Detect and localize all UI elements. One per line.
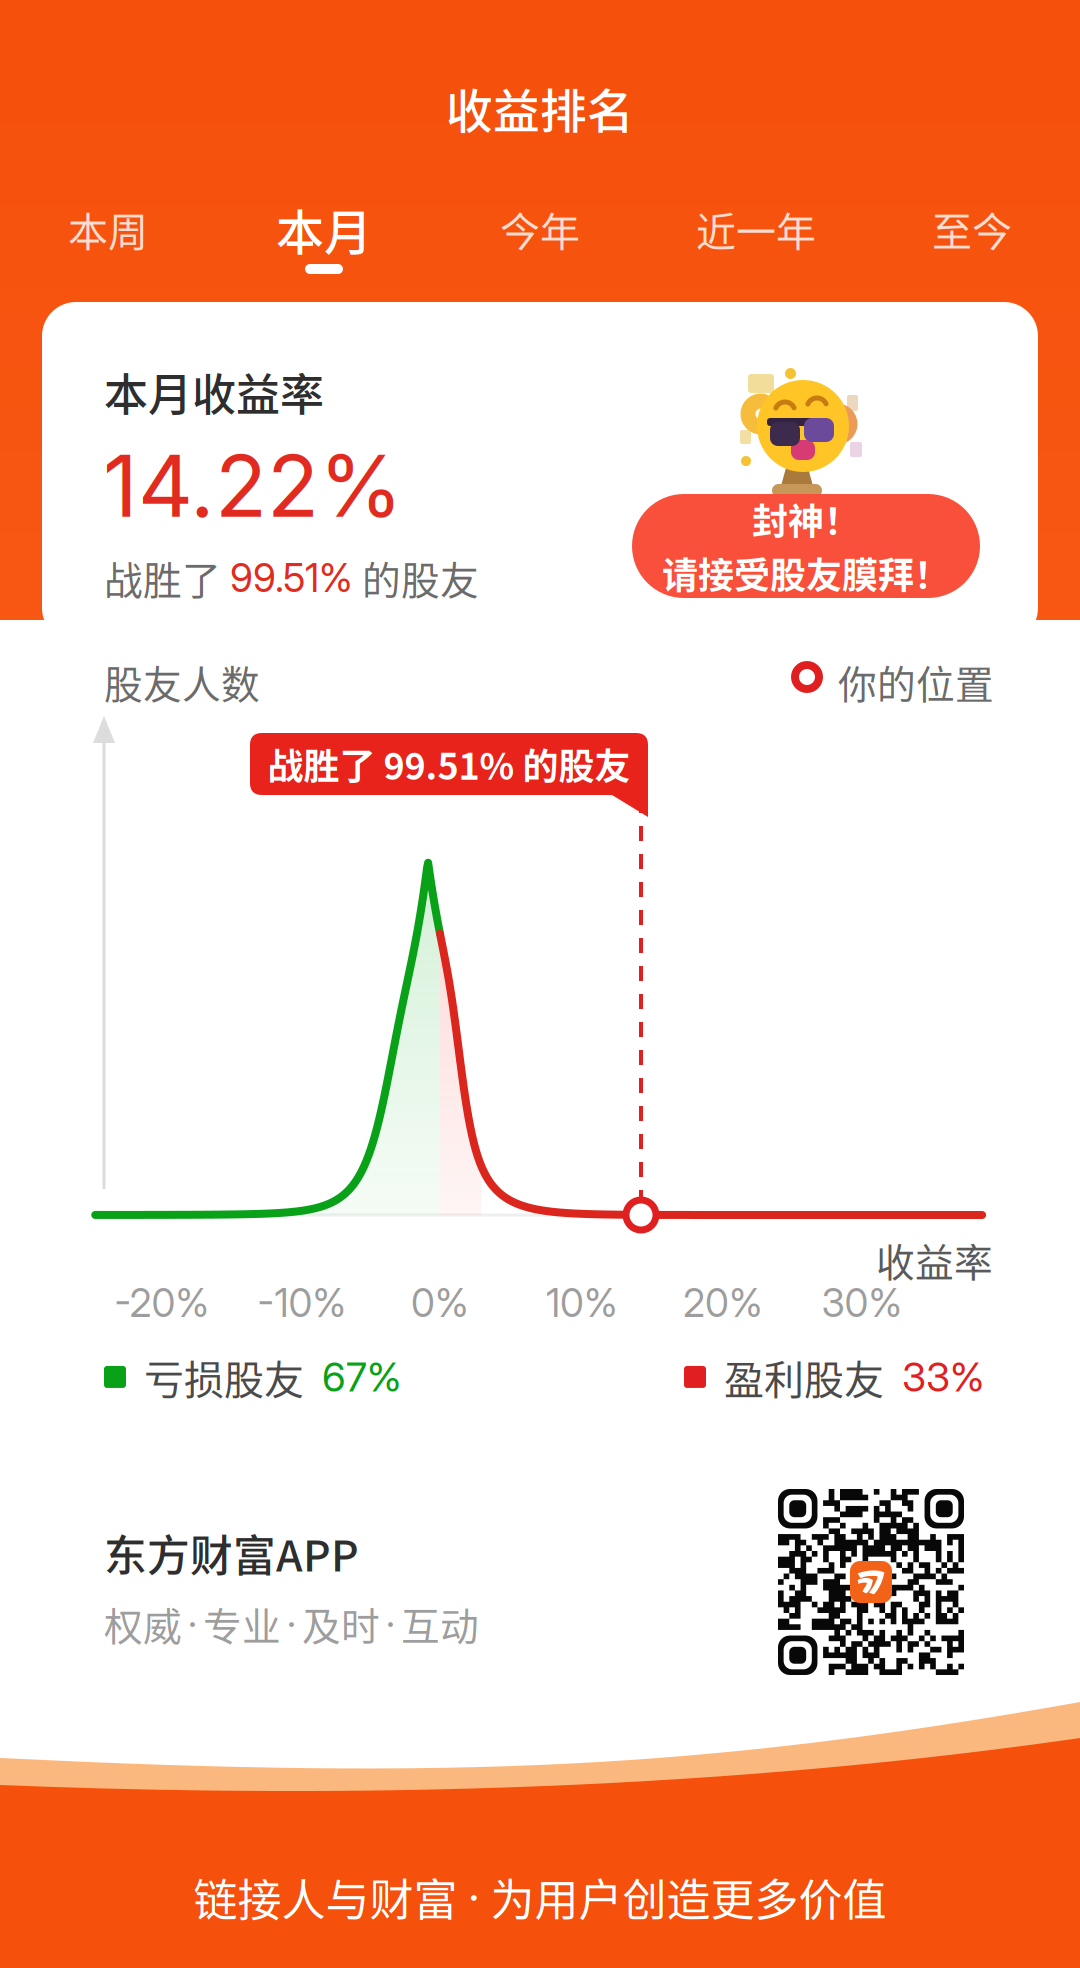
staticText: 盈利股友 bbox=[706, 1348, 902, 1406]
staticText: 你的位置 bbox=[838, 654, 994, 710]
button[interactable]: 本月 bbox=[216, 188, 432, 280]
staticText: 至今 bbox=[932, 200, 1012, 258]
staticText: 链接人与财富 bbox=[193, 1865, 467, 1929]
staticText: 东方财富APP bbox=[104, 1522, 359, 1584]
staticText: 67% bbox=[322, 1353, 401, 1401]
staticText: · bbox=[188, 1601, 197, 1647]
staticText: 及时 bbox=[302, 1596, 380, 1652]
staticText: -20% bbox=[114, 1280, 209, 1326]
staticText: · bbox=[467, 1870, 480, 1924]
staticText: 收益率 bbox=[876, 1232, 993, 1288]
staticText: 封神！ bbox=[752, 493, 860, 545]
button[interactable]: 近一年 bbox=[648, 188, 864, 280]
staticText: 亏损股友 bbox=[126, 1348, 322, 1406]
button[interactable]: 至今 bbox=[864, 188, 1080, 280]
staticText: 10% bbox=[546, 1280, 618, 1326]
staticText: 今年 bbox=[500, 200, 580, 258]
staticText: 专业 bbox=[203, 1596, 281, 1652]
staticText: 20% bbox=[683, 1280, 763, 1326]
staticText: 30% bbox=[821, 1280, 902, 1326]
staticText: 本月 bbox=[276, 194, 372, 264]
staticText: 0% bbox=[411, 1280, 469, 1326]
staticText: 权威 bbox=[104, 1596, 182, 1652]
staticText: 股友人数 bbox=[104, 654, 260, 710]
staticText: 战胜了 99.51% 的股友 bbox=[267, 738, 630, 790]
staticText: 99.51% bbox=[230, 555, 353, 601]
staticText: 战胜了 bbox=[104, 550, 230, 606]
staticText: 本周 bbox=[68, 200, 148, 258]
staticText: 请接受股友膜拜！ bbox=[662, 547, 950, 599]
staticText: 本月收益率 bbox=[104, 360, 324, 424]
staticText: 互动 bbox=[401, 1596, 479, 1652]
staticText: · bbox=[287, 1601, 296, 1647]
staticText: 收益排名 bbox=[446, 74, 634, 142]
button[interactable]: 今年 bbox=[432, 188, 648, 280]
button[interactable]: 本周 bbox=[0, 188, 216, 280]
staticText: 33% bbox=[902, 1353, 984, 1401]
staticText: 14.22% bbox=[103, 434, 403, 537]
staticText: -10% bbox=[257, 1280, 346, 1326]
staticText: 近一年 bbox=[696, 200, 816, 258]
staticText: 的股友 bbox=[353, 550, 479, 606]
staticText: · bbox=[386, 1601, 395, 1647]
staticText: 为用户创造更多价值 bbox=[480, 1865, 886, 1929]
